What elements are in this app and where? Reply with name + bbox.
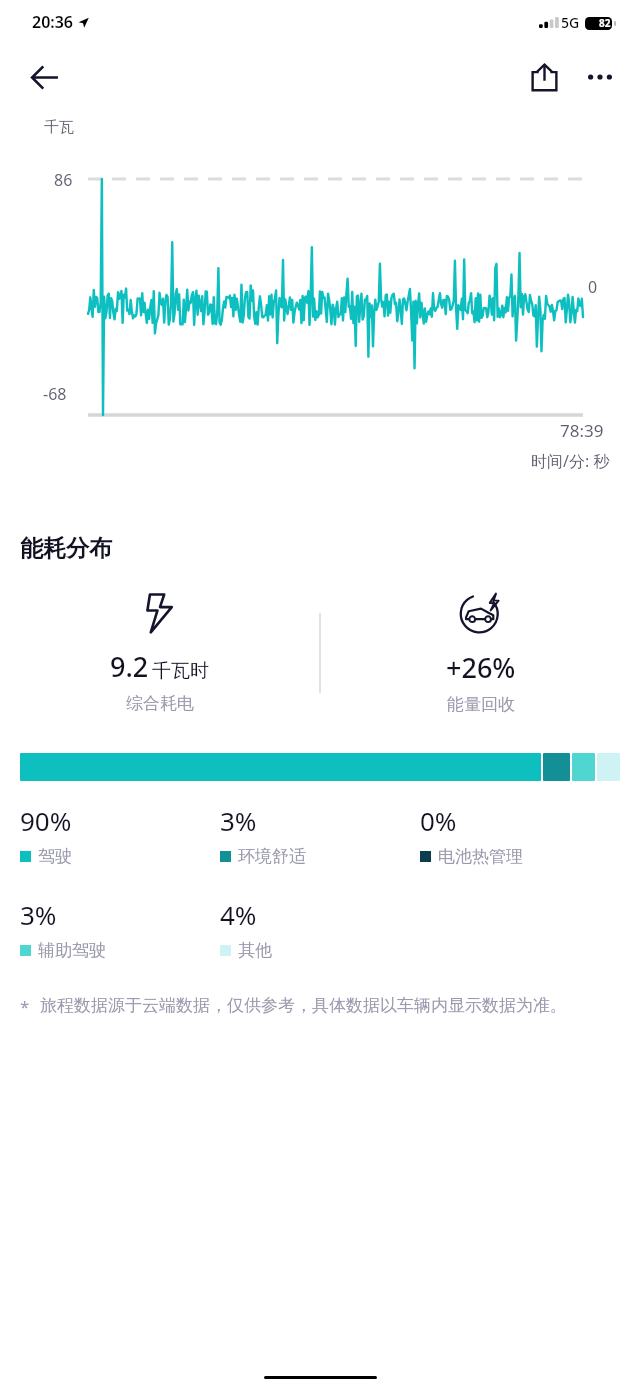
staticText: 0 xyxy=(588,276,598,298)
staticText: 9.2 xyxy=(110,648,149,685)
staticText: 4% xyxy=(220,897,257,932)
staticText: 其他 xyxy=(238,940,272,961)
staticText: 千瓦 xyxy=(44,118,74,137)
staticText: 综合耗电 xyxy=(126,693,194,714)
staticText: 电池热管理 xyxy=(438,846,523,867)
button[interactable]: 3% xyxy=(220,803,420,867)
staticText: +26% xyxy=(446,649,516,686)
staticText: 千瓦时 xyxy=(152,659,209,683)
button[interactable]: 0% xyxy=(420,803,620,867)
staticText: 86 xyxy=(54,169,73,191)
staticText: 5G xyxy=(561,13,580,32)
button[interactable]: More options xyxy=(580,57,620,97)
staticText: 能耗分布 xyxy=(20,534,112,563)
staticText: * xyxy=(20,995,30,1018)
staticText: 0% xyxy=(420,803,457,838)
staticText: 3% xyxy=(220,803,257,838)
staticText: 环境舒适 xyxy=(238,846,306,867)
staticText: -68 xyxy=(43,383,67,405)
staticText: 90% xyxy=(20,803,72,838)
staticText: 82 xyxy=(599,16,611,30)
staticText: 能量回收 xyxy=(447,694,515,715)
staticText: 3% xyxy=(20,897,57,932)
staticText: 78:39 xyxy=(560,419,604,442)
staticText: 驾驶 xyxy=(38,846,72,867)
button[interactable]: 3% xyxy=(20,897,220,961)
button[interactable]: 90% xyxy=(20,803,220,867)
staticText: 旅程数据源于云端数据，仅供参考，具体数据以车辆内显示数据为准。 xyxy=(40,995,567,1016)
staticText: 20:36 xyxy=(32,11,74,33)
button[interactable]: Back xyxy=(22,55,66,99)
button[interactable]: 4% xyxy=(220,897,420,961)
staticText: 辅助驾驶 xyxy=(38,940,106,961)
staticText: 时间/分: 秒 xyxy=(531,450,610,472)
button[interactable]: Share xyxy=(522,55,566,99)
